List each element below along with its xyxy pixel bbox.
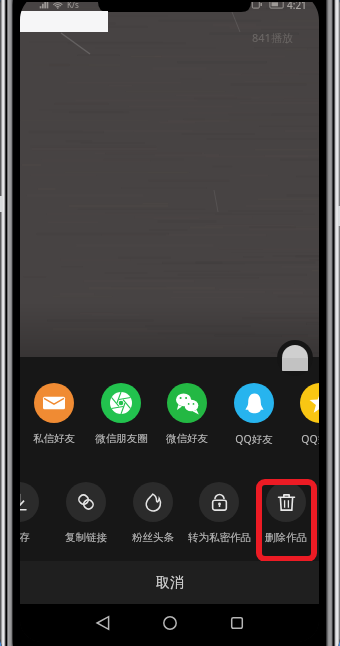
- button[interactable]: QQ空间: [284, 383, 319, 446]
- staticText: 粉丝头条: [132, 531, 174, 544]
- staticText: 4:21: [287, 2, 307, 12]
- button[interactable]: Back: [86, 606, 120, 640]
- staticText: K/s: [67, 2, 79, 10]
- staticText: 取消: [156, 574, 184, 592]
- button[interactable]: 粉丝头条: [117, 482, 189, 544]
- button[interactable]: 微信好友: [151, 383, 223, 445]
- staticText: 删除作品: [265, 531, 307, 544]
- button[interactable]: 私信好友: [20, 383, 90, 445]
- button[interactable]: 保存: [20, 482, 55, 544]
- staticText: QQ空间: [301, 432, 319, 446]
- button[interactable]: QQ好友: [218, 383, 290, 446]
- button[interactable]: 取消: [20, 561, 319, 604]
- button[interactable]: Profile: [277, 340, 313, 376]
- staticText: 转为私密作品: [188, 531, 251, 544]
- staticText: 保存: [20, 531, 30, 544]
- button[interactable]: 删除作品: [250, 482, 319, 544]
- button[interactable]: 转为私密作品: [183, 482, 255, 544]
- button[interactable]: 复制链接: [50, 482, 122, 544]
- button[interactable]: 微信朋友圈: [85, 383, 157, 445]
- staticText: 微信朋友圈: [95, 432, 148, 445]
- staticText: 841播放: [252, 30, 293, 45]
- staticText: QQ好友: [235, 432, 273, 446]
- button[interactable]: Home: [153, 606, 187, 640]
- staticText: 微信好友: [166, 432, 208, 445]
- staticText: 复制链接: [65, 531, 107, 544]
- button[interactable]: Recent apps: [220, 606, 254, 640]
- other: Delete highlight: [256, 479, 317, 562]
- staticText: 私信好友: [33, 432, 75, 445]
